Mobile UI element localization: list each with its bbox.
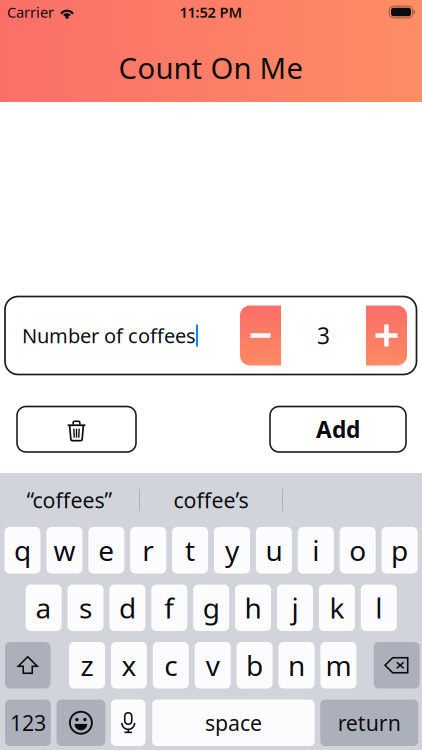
staticText: f [164, 589, 174, 626]
button[interactable]: a [26, 584, 62, 631]
button[interactable]: 123 [5, 699, 51, 746]
button[interactable]: r [130, 527, 166, 573]
staticText: Add [316, 414, 360, 444]
button[interactable]: s [67, 584, 103, 631]
staticText: p [391, 532, 408, 569]
staticText: h [245, 589, 262, 626]
staticText: “coffees” [26, 486, 112, 514]
staticText: a [36, 589, 52, 626]
button[interactable]: space [152, 699, 315, 746]
button[interactable]: n [278, 642, 314, 688]
staticText: k [329, 589, 344, 626]
staticText: t [185, 532, 195, 569]
staticText: return [338, 709, 401, 737]
button[interactable]: q [4, 527, 40, 573]
staticText: j [291, 589, 298, 626]
button[interactable]: t [172, 527, 208, 573]
button[interactable]: i [298, 527, 334, 573]
staticText: o [349, 532, 366, 569]
button[interactable]: m [320, 642, 356, 688]
staticText: d [119, 589, 136, 626]
staticText: s [79, 589, 92, 626]
staticText: y [225, 532, 239, 569]
button[interactable]: return [320, 699, 418, 746]
button[interactable]: Emoji [56, 699, 105, 746]
staticText: e [98, 532, 114, 569]
button[interactable]: Dictate [111, 699, 145, 746]
staticText: l [375, 589, 382, 626]
button[interactable]: “coffees” [0, 476, 139, 524]
staticText: x [121, 647, 136, 684]
button[interactable]: p [382, 527, 418, 573]
button[interactable]: y [214, 527, 250, 573]
staticText: Count On Me [118, 48, 303, 87]
button[interactable]: d [109, 584, 145, 631]
staticText: coffee’s [173, 486, 248, 514]
button[interactable]: k [319, 584, 355, 631]
button[interactable]: f [151, 584, 187, 631]
staticText: b [246, 647, 263, 684]
button[interactable]: l [361, 584, 397, 631]
button[interactable]: coffee’s [140, 476, 282, 524]
button[interactable]: o [340, 527, 376, 573]
staticText: g [203, 589, 220, 626]
button[interactable]: Decrease [240, 305, 281, 365]
button[interactable]: Delete [17, 406, 136, 452]
button[interactable]: j [277, 584, 313, 631]
staticText: 3 [317, 320, 330, 350]
staticText: m [325, 647, 351, 684]
staticText: q [14, 532, 31, 569]
button[interactable]: c [153, 642, 189, 688]
staticText: r [142, 532, 154, 569]
staticText: z [80, 647, 93, 684]
button[interactable]: Delete [374, 642, 420, 688]
button[interactable]: g [193, 584, 229, 631]
staticText: 123 [10, 709, 46, 737]
staticText: w [53, 532, 75, 569]
staticText: v [206, 647, 220, 684]
button[interactable]: Add [270, 406, 406, 452]
button[interactable]: z [69, 642, 105, 688]
button[interactable]: h [235, 584, 271, 631]
staticText: space [205, 709, 262, 737]
button[interactable]: x [111, 642, 147, 688]
button[interactable]: Shift [5, 642, 50, 688]
button[interactable]: b [237, 642, 273, 688]
button[interactable]: v [195, 642, 231, 688]
staticText: u [265, 532, 282, 569]
staticText: 11:52 PM [179, 2, 242, 22]
button[interactable]: Increase [366, 305, 407, 365]
staticText: c [164, 647, 177, 684]
button[interactable]: u [256, 527, 292, 573]
staticText: i [312, 532, 319, 569]
button[interactable]: w [46, 527, 82, 573]
button[interactable]: e [88, 527, 124, 573]
staticText: Carrier [7, 2, 54, 22]
staticText: n [288, 647, 305, 684]
staticText: Number of coffees [22, 322, 196, 349]
